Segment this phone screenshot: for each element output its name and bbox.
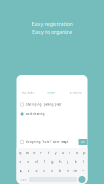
button[interactable]: SCHEDULE: [63, 89, 87, 96]
staticText: s: [27, 159, 29, 164]
staticText: ⋯: [81, 103, 84, 106]
staticText: o: [76, 150, 78, 155]
staticText: j: [67, 159, 68, 164]
staticText: OK: [81, 140, 85, 144]
staticText: k: [75, 159, 77, 164]
staticText: v: [51, 168, 53, 173]
staticText: designing 'hotel' store image: [26, 140, 69, 144]
staticText: ▲: [20, 169, 22, 172]
staticText: ⋯: [81, 112, 84, 115]
staticText: p: [83, 150, 85, 155]
staticText: Easy registration: [31, 20, 72, 27]
staticText: i: [69, 150, 70, 155]
staticText: ALL TASKS: [22, 91, 34, 94]
staticText: work cleaning: [26, 112, 45, 116]
staticText: ?123: [19, 178, 26, 181]
staticText: f: [44, 159, 45, 164]
staticText: w: [26, 150, 29, 155]
staticText: h: [59, 159, 61, 164]
staticText: Easy to organize: [32, 28, 72, 36]
staticText: y: [54, 150, 56, 155]
staticText: ←: [82, 169, 84, 172]
staticText: m: [73, 168, 77, 173]
staticText: q: [19, 150, 21, 155]
button[interactable]: TODAY: [39, 89, 63, 96]
staticText: g: [51, 159, 53, 164]
staticText: t: [48, 150, 49, 155]
staticText: n: [67, 168, 69, 173]
staticText: e: [33, 150, 35, 155]
staticText: TODAY: [47, 91, 56, 94]
staticText: d: [35, 159, 37, 164]
button[interactable]: developing 'parking place': [16, 100, 87, 109]
staticText: u: [62, 150, 64, 155]
button[interactable]: work cleaning: [16, 109, 87, 118]
staticText: l: [83, 159, 84, 164]
staticText: r: [40, 150, 42, 155]
staticText: x: [35, 168, 37, 173]
staticText: developing 'parking place': [26, 103, 62, 106]
button[interactable]: OK: [78, 139, 87, 145]
staticText: SCHEDULE: [69, 91, 81, 94]
staticText: b: [59, 168, 61, 173]
staticText: z: [28, 168, 30, 173]
button[interactable]: ?123: [18, 176, 27, 182]
button[interactable]: ALL TASKS: [16, 89, 39, 96]
staticText: c: [43, 168, 45, 173]
staticText: a: [19, 159, 21, 164]
button[interactable]: Return: [78, 176, 85, 183]
